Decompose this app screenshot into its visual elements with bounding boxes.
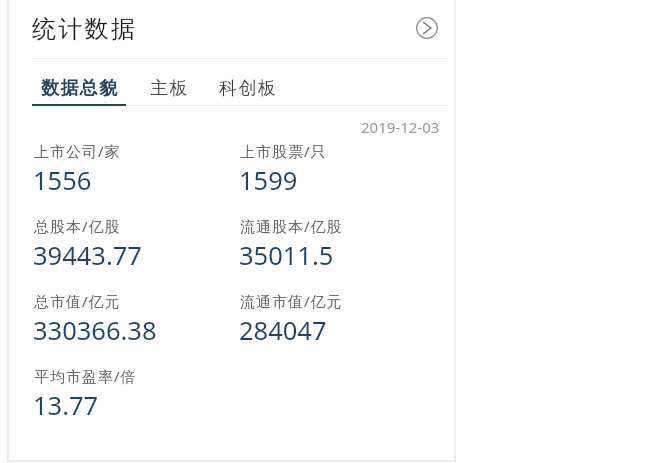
button[interactable]: 总股本/亿股: [34, 216, 234, 268]
staticText: 35011.5: [239, 238, 334, 273]
button[interactable]: 流通股本/亿股: [240, 216, 440, 268]
button[interactable]: 流通市值/亿元: [240, 291, 440, 343]
staticText: 流通股本/亿股: [240, 216, 343, 236]
button[interactable]: 平均市盈率/倍: [34, 366, 234, 418]
button[interactable]: 统计数据: [20, 8, 150, 50]
staticText: 平均市盈率/倍: [34, 366, 137, 386]
staticText: 主板: [150, 77, 189, 100]
button[interactable]: 数据总貌: [29, 70, 131, 107]
staticText: 1599: [239, 163, 298, 198]
staticText: 流通市值/亿元: [240, 291, 343, 311]
staticText: 39443.77: [33, 238, 142, 273]
button[interactable]: 主板: [138, 70, 201, 107]
button[interactable]: 科创板: [207, 70, 290, 107]
staticText: 总市值/亿元: [34, 291, 121, 311]
staticText: 数据总貌: [41, 77, 119, 100]
staticText: 科创板: [219, 77, 278, 100]
button[interactable]: 总市值/亿元: [34, 291, 234, 343]
button[interactable]: More: [411, 12, 443, 44]
staticText: 上市公司/家: [34, 141, 121, 161]
staticText: 2019-12-03: [361, 117, 440, 137]
staticText: 总股本/亿股: [34, 216, 121, 236]
staticText: 1556: [33, 163, 92, 198]
staticText: 上市股票/只: [240, 141, 327, 161]
staticText: 统计数据: [32, 14, 138, 44]
staticText: 13.77: [33, 388, 99, 423]
button[interactable]: 上市股票/只: [240, 141, 440, 193]
staticText: 284047: [239, 313, 327, 348]
button[interactable]: 上市公司/家: [34, 141, 234, 193]
staticText: 330366.38: [33, 313, 157, 348]
